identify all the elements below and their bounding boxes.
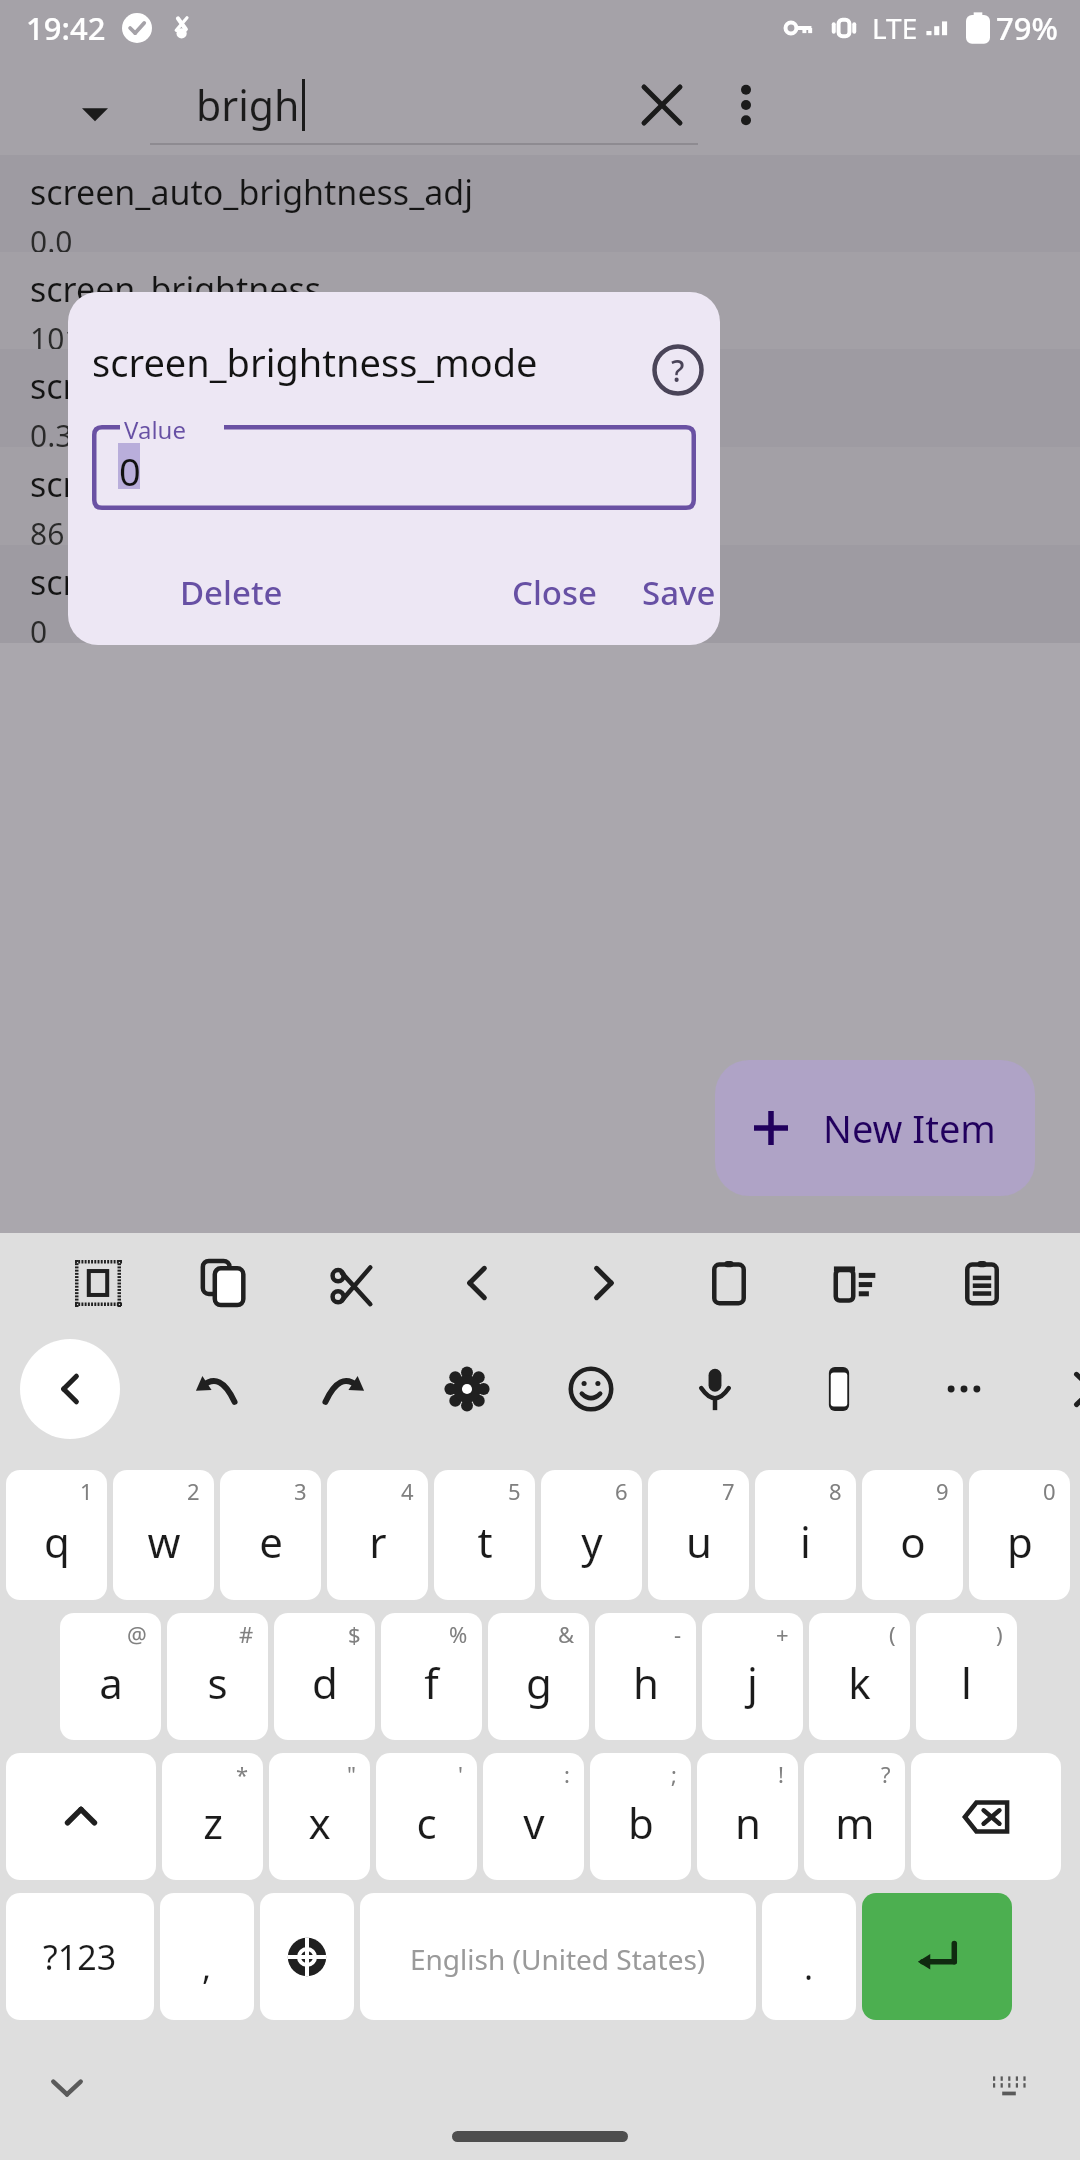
button[interactable]: Help xyxy=(630,322,720,418)
button[interactable]: Settings xyxy=(421,1343,513,1435)
button[interactable]: One-handed mode xyxy=(793,1343,885,1435)
button[interactable]: . xyxy=(762,1893,856,2020)
button[interactable]: Back xyxy=(20,1339,120,1439)
button[interactable]: 7 xyxy=(648,1470,749,1600)
button[interactable]: Hide keyboard xyxy=(32,2053,102,2123)
staticText: 1 xyxy=(80,1476,93,1506)
staticText: g xyxy=(526,1654,552,1711)
staticText: & xyxy=(558,1619,575,1649)
button[interactable]: % xyxy=(381,1613,482,1740)
button[interactable]: @ xyxy=(60,1613,161,1740)
staticText: ; xyxy=(671,1759,677,1789)
button[interactable]: - xyxy=(595,1613,696,1740)
button[interactable]: : xyxy=(483,1753,584,1880)
button[interactable]: New Item xyxy=(715,1060,1035,1196)
button[interactable]: More xyxy=(918,1343,1010,1435)
button[interactable]: Backspace xyxy=(911,1753,1061,1880)
staticText: screen_brightness_mode xyxy=(92,336,538,388)
button[interactable]: 0 xyxy=(969,1470,1070,1600)
staticText: f xyxy=(424,1654,439,1711)
button[interactable]: Filter dropdown xyxy=(62,81,128,147)
staticText: 19:42 xyxy=(26,7,106,49)
button[interactable]: Move left xyxy=(431,1237,523,1329)
staticText: LTE xyxy=(872,9,918,47)
staticText: l xyxy=(961,1654,972,1711)
button[interactable]: Cut xyxy=(305,1237,397,1329)
button[interactable]: ; xyxy=(590,1753,691,1880)
button[interactable]: 9 xyxy=(862,1470,963,1600)
button[interactable]: " xyxy=(269,1753,370,1880)
button[interactable]: screen_brightness_float xyxy=(0,349,1080,447)
button[interactable]: Delete xyxy=(164,558,299,627)
staticText: ? xyxy=(671,350,685,391)
button[interactable]: ) xyxy=(916,1613,1017,1740)
staticText: 7 xyxy=(722,1476,735,1506)
staticText: ?123 xyxy=(43,1934,117,1980)
button[interactable]: 8 xyxy=(755,1470,856,1600)
button[interactable]: ! xyxy=(697,1753,798,1880)
staticText: b xyxy=(628,1794,654,1851)
button[interactable]: 5 xyxy=(434,1470,535,1600)
staticText: e xyxy=(259,1513,283,1570)
button[interactable]: English (United States) xyxy=(360,1893,756,2020)
staticText: ) xyxy=(996,1619,1003,1649)
button[interactable]: screen_brightness_for_vr xyxy=(0,447,1080,545)
button[interactable]: screen_auto_brightness_adj xyxy=(0,155,1080,252)
button[interactable]: & xyxy=(488,1613,589,1740)
staticText: New Item xyxy=(823,1102,996,1154)
staticText: p xyxy=(1007,1513,1033,1570)
button[interactable]: ?123 xyxy=(6,1893,154,2020)
button[interactable]: 2 xyxy=(113,1470,214,1600)
button[interactable]: Clear search xyxy=(628,71,696,139)
button[interactable]: Undo xyxy=(172,1343,264,1435)
button[interactable]: 1 xyxy=(6,1470,107,1600)
staticText: @ xyxy=(127,1619,147,1649)
button[interactable]: Save xyxy=(626,558,720,627)
button[interactable]: Move right xyxy=(557,1237,649,1329)
button[interactable]: Paste xyxy=(683,1237,775,1329)
staticText: + xyxy=(776,1619,789,1649)
staticText: : xyxy=(564,1759,570,1789)
button[interactable]: 4 xyxy=(327,1470,428,1600)
button[interactable]: + xyxy=(702,1613,803,1740)
button[interactable]: ? xyxy=(804,1753,905,1880)
button[interactable]: screen_brightness_mode xyxy=(0,545,1080,643)
staticText: o xyxy=(900,1513,926,1570)
button[interactable]: , xyxy=(160,1893,254,2020)
button[interactable]: Change language xyxy=(260,1893,354,2020)
staticText: 4 xyxy=(401,1476,414,1506)
staticText: . xyxy=(804,1944,814,1990)
button[interactable]: Redo xyxy=(296,1343,388,1435)
staticText: 9 xyxy=(936,1476,949,1506)
button[interactable]: Switch keyboard xyxy=(974,2051,1044,2121)
button[interactable]: ( xyxy=(809,1613,910,1740)
staticText: screen_brightness_mode xyxy=(30,559,429,605)
button[interactable]: # xyxy=(167,1613,268,1740)
staticText: t xyxy=(477,1513,493,1570)
staticText: 6 xyxy=(615,1476,628,1506)
button[interactable]: Shift xyxy=(6,1753,156,1880)
staticText: English (United States) xyxy=(410,1940,706,1978)
staticText: % xyxy=(449,1619,468,1649)
button[interactable]: screen_brightness xyxy=(0,252,1080,349)
button[interactable]: ' xyxy=(376,1753,477,1880)
button[interactable]: Enter xyxy=(862,1893,1012,2020)
staticText: h xyxy=(633,1654,659,1711)
button[interactable]: 6 xyxy=(541,1470,642,1600)
button[interactable]: Copy xyxy=(178,1237,270,1329)
button[interactable]: More options xyxy=(712,71,780,139)
button[interactable]: 3 xyxy=(220,1470,321,1600)
button[interactable]: Voice input xyxy=(669,1343,761,1435)
button[interactable]: Clipboard xyxy=(936,1237,1028,1329)
button[interactable]: Select all xyxy=(52,1237,144,1329)
staticText: 8 xyxy=(829,1476,842,1506)
staticText: n xyxy=(735,1794,761,1851)
button[interactable]: Collapse xyxy=(1042,1343,1080,1435)
button[interactable]: * xyxy=(162,1753,263,1880)
button[interactable]: Emoji xyxy=(545,1343,637,1435)
staticText: # xyxy=(239,1619,254,1649)
button[interactable]: Close xyxy=(496,558,614,627)
button[interactable]: Delete clip xyxy=(810,1237,902,1329)
button[interactable]: $ xyxy=(274,1613,375,1740)
staticText: k xyxy=(848,1654,871,1711)
